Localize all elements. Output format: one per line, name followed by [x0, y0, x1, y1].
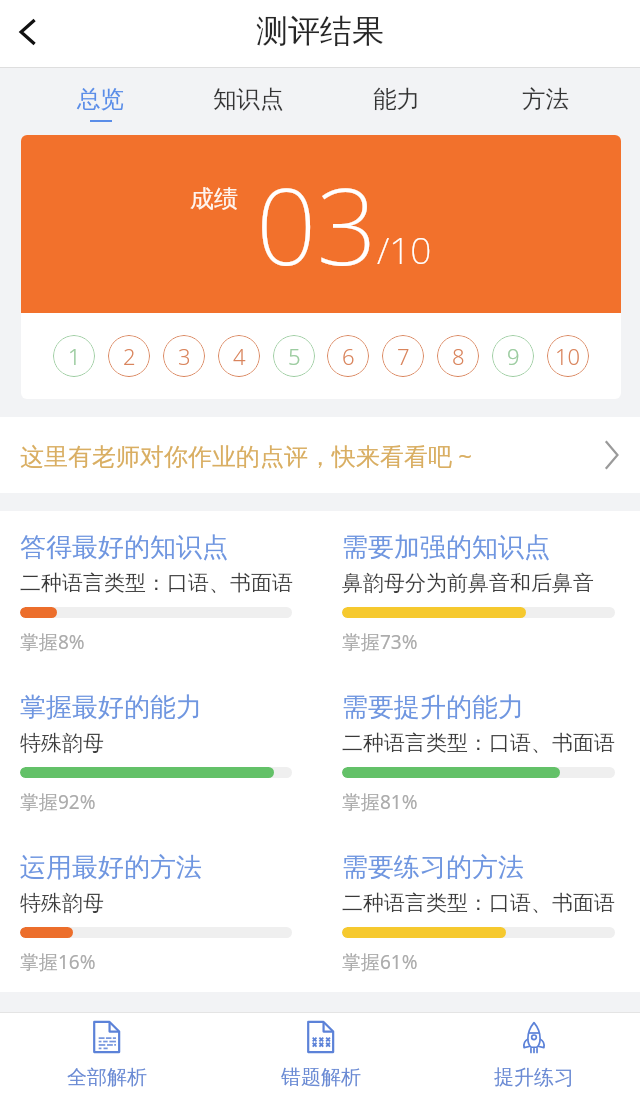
- staticText: 需要练习的方法: [342, 851, 524, 884]
- button[interactable]: 2: [108, 335, 150, 377]
- staticText: 二种语言类型：口语、书面语: [20, 570, 292, 596]
- staticText: 掌握16%: [20, 949, 96, 975]
- staticText: 1: [68, 341, 81, 371]
- staticText: 运用最好的方法: [20, 851, 202, 884]
- button[interactable]: 提升练习: [427, 1013, 640, 1097]
- staticText: 2: [123, 341, 136, 371]
- other: 查看点评: [604, 440, 619, 470]
- button[interactable]: 9: [492, 335, 534, 377]
- button[interactable]: 能力: [322, 68, 471, 135]
- staticText: 需要提升的能力: [342, 691, 524, 724]
- staticText: 10: [555, 341, 581, 371]
- button[interactable]: 掌握最好的能力: [20, 691, 292, 815]
- staticText: 需要加强的知识点: [342, 531, 550, 564]
- button[interactable]: 总览: [26, 68, 174, 135]
- staticText: 3: [178, 341, 191, 371]
- staticText: 掌握61%: [342, 949, 418, 975]
- button[interactable]: 5: [273, 335, 315, 377]
- staticText: 全部解析: [67, 1065, 147, 1090]
- staticText: 掌握81%: [342, 789, 418, 815]
- staticText: 掌握73%: [342, 629, 418, 655]
- staticText: 6: [342, 341, 355, 371]
- staticText: 9: [507, 341, 520, 371]
- button[interactable]: 这里有老师对你作业的点评，快来看看吧 ~: [0, 417, 640, 493]
- staticText: 掌握最好的能力: [20, 691, 202, 724]
- button[interactable]: 7: [382, 335, 424, 377]
- staticText: 二种语言类型：口语、书面语: [342, 730, 615, 756]
- staticText: 8: [452, 341, 465, 371]
- button[interactable]: 方法: [471, 68, 620, 135]
- staticText: 掌握8%: [20, 629, 85, 655]
- button[interactable]: 3: [163, 335, 205, 377]
- staticText: 错题解析: [281, 1065, 361, 1090]
- button[interactable]: 8: [437, 335, 479, 377]
- button[interactable]: 10: [547, 335, 589, 377]
- staticText: 这里有老师对你作业的点评，快来看看吧 ~: [20, 439, 472, 472]
- button[interactable]: 需要提升的能力: [342, 691, 615, 815]
- staticText: 提升练习: [494, 1065, 574, 1090]
- button[interactable]: 全部解析: [0, 1013, 214, 1097]
- staticText: 测评结果: [256, 11, 384, 51]
- button[interactable]: Back: [0, 4, 56, 60]
- staticText: 成绩: [190, 184, 238, 214]
- button[interactable]: 运用最好的方法: [20, 851, 292, 975]
- button[interactable]: 4: [218, 335, 260, 377]
- staticText: /10: [377, 224, 432, 274]
- staticText: 5: [288, 341, 301, 371]
- button[interactable]: 需要练习的方法: [342, 851, 615, 975]
- button[interactable]: 错题解析: [214, 1013, 427, 1097]
- staticText: 二种语言类型：口语、书面语: [342, 890, 615, 916]
- staticText: 特殊韵母: [20, 890, 104, 916]
- staticText: 总览: [77, 84, 124, 114]
- staticText: 知识点: [213, 84, 284, 114]
- staticText: 掌握92%: [20, 789, 96, 815]
- staticText: 特殊韵母: [20, 730, 104, 756]
- staticText: 答得最好的知识点: [20, 531, 228, 564]
- button[interactable]: 需要加强的知识点: [342, 531, 615, 655]
- staticText: 7: [397, 341, 410, 371]
- button[interactable]: 1: [53, 335, 95, 377]
- staticText: 4: [233, 341, 246, 371]
- button[interactable]: 知识点: [174, 68, 322, 135]
- button[interactable]: 答得最好的知识点: [20, 531, 292, 655]
- staticText: 方法: [522, 84, 569, 114]
- staticText: 能力: [373, 84, 420, 114]
- staticText: 鼻韵母分为前鼻音和后鼻音: [342, 570, 594, 596]
- staticText: 03: [256, 152, 377, 296]
- button[interactable]: 6: [327, 335, 369, 377]
